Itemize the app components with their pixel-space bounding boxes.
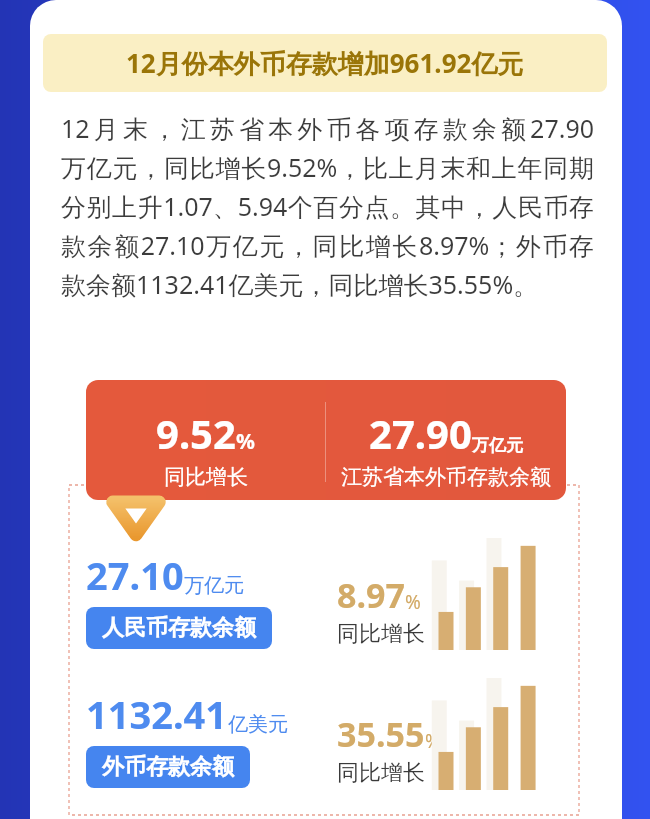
staticText: 9.52 [156,406,236,460]
staticText: 27.10 [86,549,184,601]
staticText: 1132.41 [86,688,228,740]
button[interactable]: 9.52 [86,380,566,500]
staticText: 8.97 [337,572,405,618]
staticText: 万亿元 [472,435,523,456]
staticText: 江苏省本外币存款余额 [341,464,551,490]
staticText: 27.90 [369,406,472,460]
staticText: 同比增长 [164,464,248,490]
button[interactable]: 人民币存款余额 [86,607,272,649]
staticText: 亿美元 [228,712,288,737]
staticText: 同比增长 [337,759,425,787]
staticText: 人民币存款余额 [102,614,256,642]
staticText: 12月末，江苏省本外币各项存款余额27.90万亿元，同比增长9.52%，比上月末… [61,111,594,301]
staticText: 外币存款余额 [102,753,234,781]
staticText: 万亿元 [184,573,244,598]
staticText: 同比增长 [337,620,425,648]
staticText: % [405,589,421,615]
button[interactable]: 外币存款余额 [86,746,250,788]
staticText: % [425,728,441,754]
button[interactable]: 12月份本外币存款增加961.92亿元 [43,34,607,92]
staticText: 12月份本外币存款增加961.92亿元 [126,45,524,81]
staticText: % [236,427,255,456]
staticText: 35.55 [337,711,425,757]
